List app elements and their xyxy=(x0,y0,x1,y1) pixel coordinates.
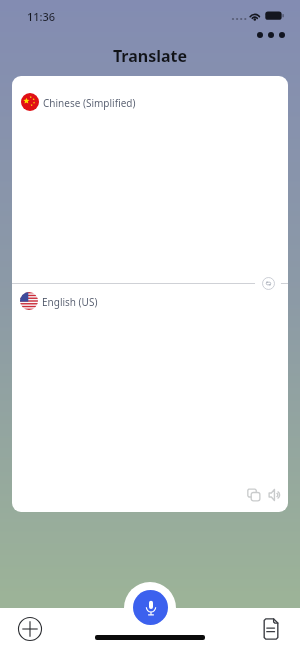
button[interactable]: Listen xyxy=(265,485,285,505)
button[interactable]: English (US) xyxy=(12,284,288,409)
button[interactable]: Document xyxy=(255,613,286,644)
staticText: English (US) xyxy=(42,295,98,309)
button[interactable]: Voice input xyxy=(133,590,168,625)
button[interactable]: Chinese (Simplified) xyxy=(12,76,288,201)
button[interactable]: Copy xyxy=(244,485,264,505)
button[interactable]: Add xyxy=(14,613,45,644)
staticText: Translate xyxy=(0,45,300,67)
staticText: 11:36 xyxy=(27,9,56,24)
staticText: Chinese (Simplified) xyxy=(43,96,136,110)
button[interactable]: More options xyxy=(251,25,290,45)
button[interactable]: Swap languages xyxy=(255,270,281,296)
